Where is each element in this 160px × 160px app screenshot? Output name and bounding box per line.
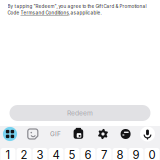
button[interactable]: 8 <box>112 148 127 160</box>
button[interactable]: 7 <box>96 148 111 160</box>
button[interactable]: More apps <box>117 125 135 143</box>
button[interactable]: 6 <box>80 148 95 160</box>
button[interactable]: Photos <box>69 125 87 143</box>
staticText: 0 <box>148 148 155 160</box>
button[interactable]: Stickers <box>24 125 42 143</box>
staticText: GIF <box>50 130 61 138</box>
staticText: Code Terms and Conditions, as applicable… <box>7 10 101 15</box>
staticText: 2 <box>20 148 27 160</box>
button[interactable]: Redeem <box>9 105 150 121</box>
button[interactable]: 9 <box>128 148 143 160</box>
button[interactable]: 0 <box>144 148 159 160</box>
button[interactable]: 2 <box>16 148 31 160</box>
staticText: 4 <box>52 148 59 160</box>
button[interactable]: Code Terms and Conditions, as applicable… <box>7 10 101 15</box>
staticText: 6 <box>84 148 91 160</box>
staticText: 5 <box>68 148 75 160</box>
staticText: 8 <box>116 148 123 160</box>
staticText: 1 <box>5 148 10 160</box>
staticText: 7 <box>101 148 107 160</box>
button[interactable]: 5 <box>64 148 79 160</box>
staticText: 9 <box>132 148 139 160</box>
button[interactable]: GIF <box>47 125 65 143</box>
button[interactable]: 4 <box>48 148 63 160</box>
staticText: By tapping "Redeem", you agree to the Gi… <box>7 4 146 9</box>
button[interactable]: Settings <box>94 125 112 143</box>
button[interactable]: 3 <box>32 148 47 160</box>
button[interactable]: 1 <box>0 148 15 160</box>
button[interactable]: App Store <box>1 125 19 143</box>
staticText: 3 <box>36 148 43 160</box>
staticText: Redeem <box>67 109 93 117</box>
button[interactable]: Dictation <box>138 125 156 143</box>
